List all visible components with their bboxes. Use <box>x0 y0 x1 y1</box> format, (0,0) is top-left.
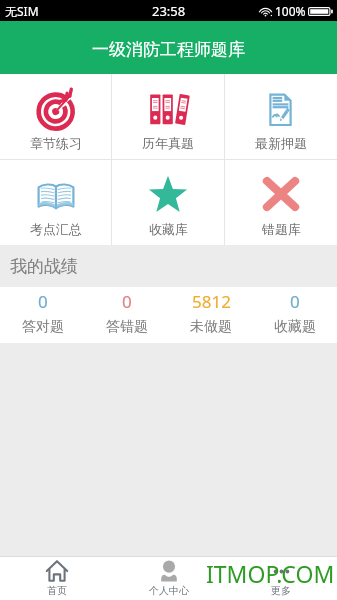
staticText: 答错题 <box>106 318 148 336</box>
staticText: 首页 <box>47 584 67 597</box>
button[interactable]: 0 <box>85 287 169 343</box>
other: 首页 <box>46 560 68 582</box>
staticText: 收藏题 <box>274 318 316 336</box>
button[interactable]: 最新押题 <box>225 74 337 159</box>
staticText: 0 <box>290 290 300 313</box>
staticText: 23:58 <box>152 2 186 20</box>
staticText: 无SIM <box>5 3 39 19</box>
button[interactable]: 首页 <box>0 557 113 600</box>
staticText: 章节练习 <box>30 135 82 151</box>
button[interactable]: 个人中心 <box>113 557 225 600</box>
staticText: ITMOP.COM <box>206 558 335 589</box>
staticText: 最新押题 <box>255 135 307 151</box>
staticText: 我的战绩 <box>10 256 78 277</box>
button[interactable]: 历年真题 <box>112 74 224 159</box>
button[interactable]: 0 <box>0 287 85 343</box>
button[interactable]: 5812 <box>169 287 253 343</box>
staticText: 个人中心 <box>149 584 189 597</box>
staticText: 错题库 <box>262 221 301 237</box>
staticText: 答对题 <box>22 318 64 336</box>
staticText: 历年真题 <box>142 135 194 151</box>
staticText: 未做题 <box>190 318 232 336</box>
button[interactable]: 章节练习 <box>0 74 111 159</box>
button[interactable]: 更多 <box>225 557 337 600</box>
button[interactable]: 0 <box>253 287 337 343</box>
staticText: 考点汇总 <box>30 221 82 237</box>
other: 个人中心 <box>158 560 180 582</box>
staticText: 一级消防工程师题库 <box>92 39 245 60</box>
staticText: 5812 <box>192 290 231 313</box>
staticText: 0 <box>122 290 132 313</box>
staticText: 收藏库 <box>149 221 188 237</box>
staticText: 100% <box>275 3 306 19</box>
button[interactable]: 考点汇总 <box>0 160 111 245</box>
button[interactable]: 错题库 <box>225 160 337 245</box>
staticText: 更多 <box>271 584 291 597</box>
button[interactable]: 收藏库 <box>112 160 224 245</box>
staticText: 0 <box>38 290 48 313</box>
other: 更多 <box>271 561 292 582</box>
